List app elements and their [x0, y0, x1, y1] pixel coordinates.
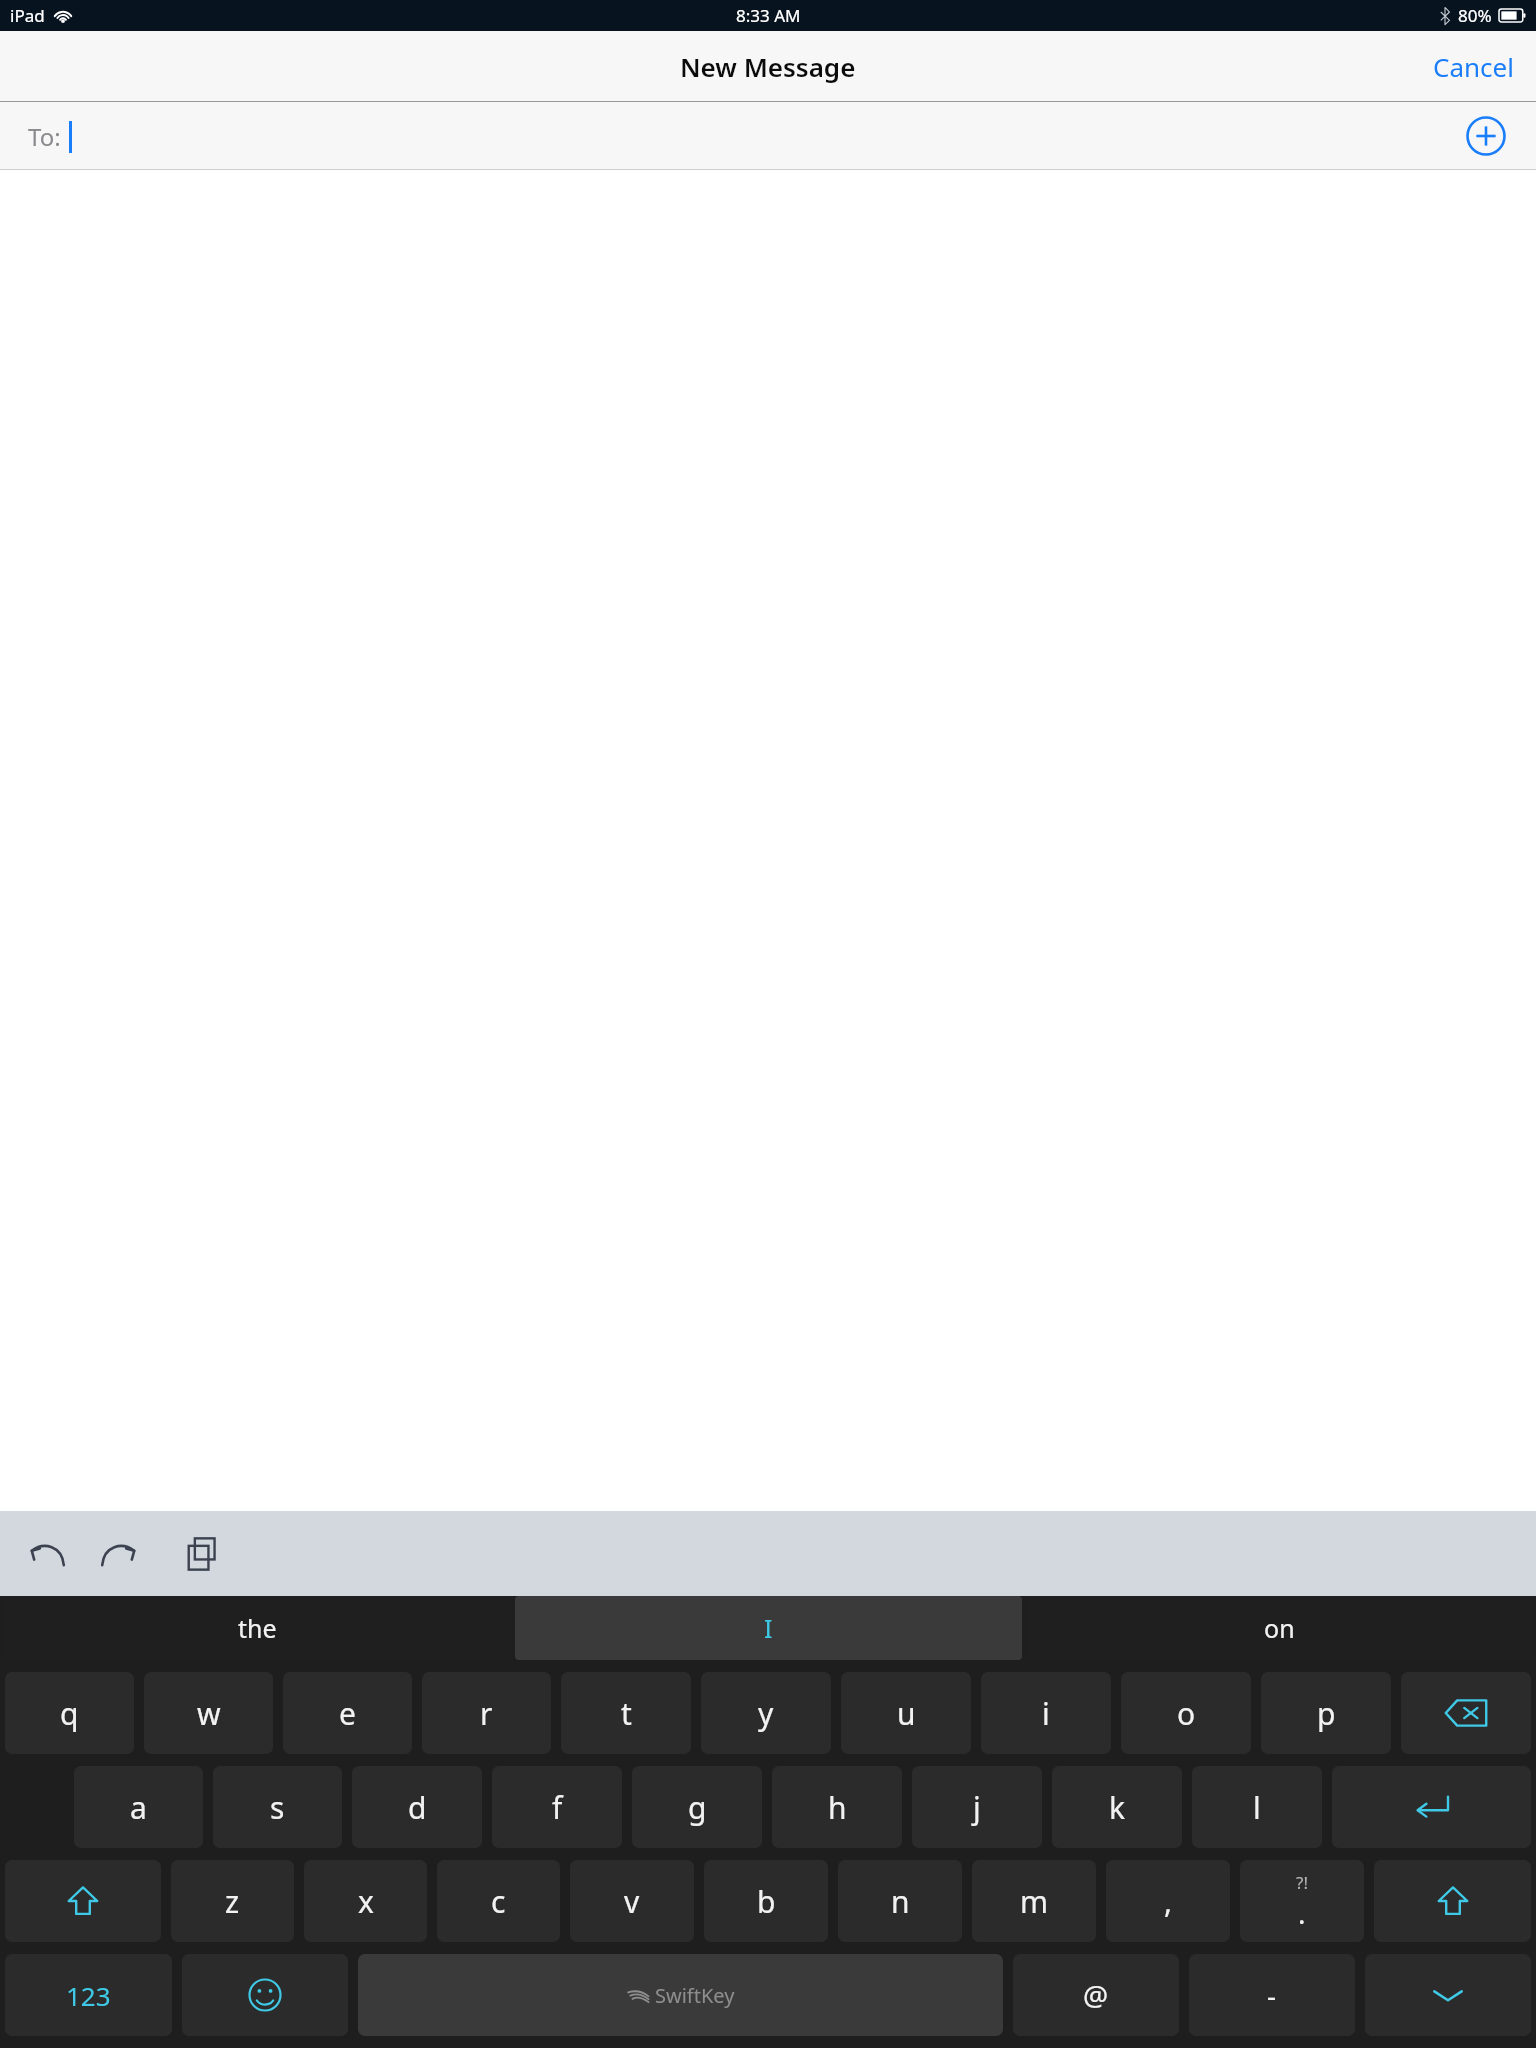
staticText: r — [480, 1693, 493, 1734]
staticText: q — [60, 1693, 79, 1734]
staticText: u — [897, 1693, 916, 1734]
button[interactable]: on — [1026, 1596, 1533, 1660]
staticText: p — [1317, 1693, 1336, 1734]
staticText: y — [758, 1693, 774, 1734]
staticText: f — [552, 1787, 563, 1828]
button[interactable]: i — [981, 1672, 1111, 1754]
staticText: o — [1177, 1693, 1196, 1734]
staticText: c — [491, 1881, 506, 1922]
button[interactable]: Space — [358, 1954, 1003, 2036]
staticText: t — [621, 1693, 632, 1734]
button[interactable]: v — [570, 1860, 694, 1942]
staticText: d — [408, 1787, 427, 1828]
button[interactable]: j — [912, 1766, 1042, 1848]
button[interactable]: g — [632, 1766, 762, 1848]
button[interactable]: Emoji — [182, 1954, 348, 2036]
staticText: - — [1267, 1976, 1277, 2014]
button[interactable]: r — [422, 1672, 551, 1754]
staticText: 123 — [66, 1978, 111, 2013]
button[interactable]: o — [1121, 1672, 1251, 1754]
button[interactable]: the — [3, 1596, 511, 1660]
button[interactable]: I — [515, 1596, 1022, 1660]
button[interactable]: q — [5, 1672, 134, 1754]
button[interactable]: Return — [1332, 1766, 1531, 1848]
staticText: s — [270, 1787, 285, 1828]
button[interactable]: @ — [1013, 1954, 1179, 2036]
staticText: m — [1020, 1881, 1049, 1922]
button[interactable]: Undo — [16, 1523, 78, 1585]
button[interactable]: s — [213, 1766, 342, 1848]
button[interactable]: x — [304, 1860, 427, 1942]
staticText: . — [1298, 1894, 1306, 1932]
staticText: Cancel — [1433, 49, 1514, 84]
button[interactable]: ?! — [1240, 1860, 1364, 1942]
staticText: the — [238, 1611, 277, 1645]
button[interactable]: h — [772, 1766, 902, 1848]
button[interactable]: n — [838, 1860, 962, 1942]
button[interactable]: 123 — [5, 1954, 172, 2036]
button[interactable]: Clipboard — [172, 1523, 234, 1585]
staticText: x — [358, 1881, 374, 1922]
button[interactable]: Shift — [1374, 1860, 1531, 1942]
staticText: SwiftKey — [655, 1982, 735, 2009]
staticText: j — [973, 1787, 981, 1828]
button[interactable]: - — [1189, 1954, 1355, 2036]
button[interactable]: Add contact — [1460, 110, 1512, 162]
button[interactable]: p — [1261, 1672, 1391, 1754]
staticText: @ — [1083, 1976, 1109, 2014]
button[interactable]: e — [283, 1672, 412, 1754]
staticText: I — [764, 1611, 773, 1645]
button[interactable]: f — [492, 1766, 622, 1848]
staticText: v — [624, 1881, 640, 1922]
staticText: l — [1253, 1787, 1261, 1828]
staticText: w — [197, 1693, 221, 1734]
button[interactable]: y — [701, 1672, 831, 1754]
button[interactable]: w — [144, 1672, 273, 1754]
staticText: b — [757, 1881, 776, 1922]
staticText: 80% — [1458, 4, 1492, 27]
button[interactable]: m — [972, 1860, 1096, 1942]
staticText: a — [130, 1787, 147, 1828]
button[interactable]: Cancel — [1411, 37, 1536, 96]
staticText: on — [1264, 1611, 1295, 1645]
staticText: n — [891, 1881, 910, 1922]
staticText: g — [688, 1787, 707, 1828]
staticText: e — [339, 1693, 356, 1734]
staticText: New Message — [680, 49, 856, 84]
button[interactable]: , — [1106, 1860, 1230, 1942]
button[interactable]: Backspace — [1401, 1672, 1531, 1754]
button[interactable]: Shift — [5, 1860, 161, 1942]
button[interactable]: b — [704, 1860, 828, 1942]
staticText: ?! — [1296, 1871, 1308, 1894]
button[interactable]: c — [437, 1860, 560, 1942]
button[interactable]: d — [352, 1766, 482, 1848]
button[interactable]: t — [561, 1672, 691, 1754]
staticText: iPad — [10, 4, 45, 27]
staticText: , — [1164, 1881, 1173, 1922]
button[interactable]: Redo — [88, 1523, 150, 1585]
button[interactable]: k — [1052, 1766, 1182, 1848]
staticText: k — [1109, 1787, 1126, 1828]
staticText: z — [225, 1881, 240, 1922]
button[interactable]: l — [1192, 1766, 1322, 1848]
staticText: 8:33 AM — [736, 4, 801, 27]
button[interactable]: a — [74, 1766, 203, 1848]
button[interactable]: z — [171, 1860, 294, 1942]
staticText: i — [1042, 1693, 1050, 1734]
button[interactable]: Hide keyboard — [1365, 1954, 1531, 2036]
staticText: h — [828, 1787, 847, 1828]
staticText: To: — [28, 120, 61, 153]
button[interactable]: u — [841, 1672, 971, 1754]
